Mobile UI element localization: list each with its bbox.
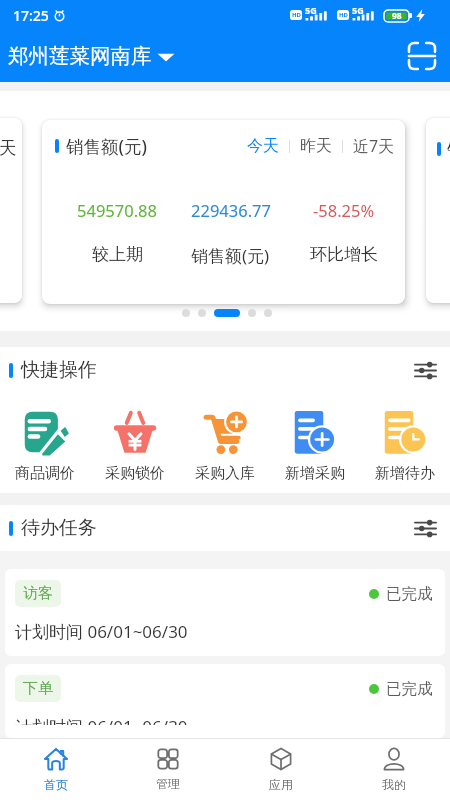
button[interactable]: 筛选 bbox=[410, 355, 440, 385]
staticText: 快捷操作 bbox=[21, 358, 97, 382]
staticText: 549570.88 bbox=[77, 199, 157, 221]
staticText: 访客 bbox=[23, 584, 53, 603]
staticText: 5G bbox=[305, 4, 317, 16]
staticText: 下单 bbox=[23, 679, 53, 698]
button[interactable]: 访客 bbox=[5, 569, 445, 656]
staticText: HD bbox=[339, 11, 348, 19]
button[interactable]: 首页 bbox=[0, 739, 112, 800]
staticText: 计划时间 06/01~06/30 bbox=[15, 715, 188, 725]
button[interactable]: 新增待办 bbox=[360, 393, 450, 483]
staticText: 5G bbox=[352, 4, 364, 16]
button[interactable]: 筛选 bbox=[410, 513, 440, 543]
button[interactable]: 商品调价 bbox=[0, 393, 90, 483]
staticText: 我的 bbox=[382, 777, 406, 792]
staticText: 采购锁价 bbox=[105, 464, 165, 483]
staticText: 17:25 bbox=[13, 6, 49, 25]
staticText: 管理 bbox=[156, 776, 180, 791]
staticText: 229436.77 bbox=[191, 199, 271, 221]
staticText: 昨天 bbox=[300, 136, 332, 156]
staticText: 应用 bbox=[269, 777, 293, 792]
staticText: 新增采购 bbox=[285, 464, 345, 483]
staticText: 郑州莲菜网南库 bbox=[8, 43, 152, 69]
button[interactable]: 采购锁价 bbox=[90, 393, 180, 483]
staticText: 销 bbox=[447, 138, 450, 160]
button[interactable]: 新增采购 bbox=[270, 393, 360, 483]
staticText: 今天 bbox=[247, 136, 279, 156]
staticText: 待办任务 bbox=[21, 516, 97, 540]
staticText: 首页 bbox=[44, 777, 68, 792]
staticText: 近7天 bbox=[353, 135, 395, 157]
button[interactable]: 扫一扫 bbox=[404, 38, 440, 74]
staticText: 销售额(元) bbox=[66, 134, 147, 158]
staticText: 天 bbox=[0, 137, 17, 159]
button[interactable]: 我的 bbox=[337, 739, 450, 800]
staticText: 较上期 bbox=[92, 244, 143, 265]
button[interactable]: 应用 bbox=[224, 739, 337, 800]
staticText: 计划时间 06/01~06/30 bbox=[15, 620, 188, 643]
staticText: 98 bbox=[392, 10, 402, 22]
staticText: 已完成 bbox=[386, 679, 433, 699]
staticText: 已完成 bbox=[386, 584, 433, 604]
staticText: 销售额(元) bbox=[191, 244, 270, 267]
staticText: 商品调价 bbox=[15, 464, 75, 483]
button[interactable]: 下单 bbox=[5, 664, 445, 738]
staticText: 环比增长 bbox=[310, 244, 378, 265]
staticText: HD bbox=[292, 11, 301, 19]
staticText: -58.25% bbox=[313, 199, 375, 221]
button[interactable]: 销售额(元) bbox=[42, 120, 405, 304]
button[interactable]: 采购入库 bbox=[180, 393, 270, 483]
staticText: 新增待办 bbox=[375, 464, 435, 483]
button[interactable]: 郑州莲菜网南库 bbox=[6, 37, 177, 75]
staticText: 采购入库 bbox=[195, 464, 255, 483]
button[interactable]: 管理 bbox=[112, 739, 224, 800]
